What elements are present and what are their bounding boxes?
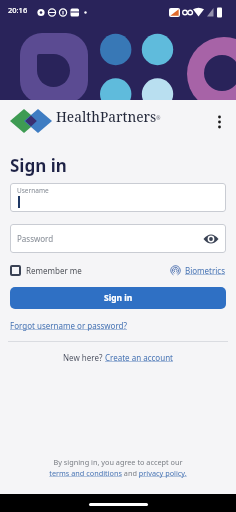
staticText: By signing in, you agree to accept our	[0, 457, 236, 467]
button[interactable]	[10, 265, 21, 276]
staticText: Create an account	[105, 352, 173, 363]
button[interactable]: Forgot username or password?	[10, 320, 127, 331]
button[interactable]: Password	[10, 224, 226, 253]
staticText: 20:16	[8, 5, 28, 15]
staticText: HealthPartners®	[56, 108, 161, 126]
staticText: Sign in	[10, 154, 67, 177]
staticText: Username	[17, 186, 49, 195]
button[interactable]: Sign in	[10, 287, 226, 309]
staticText: Biometrics	[185, 265, 226, 276]
staticText: Sign in	[104, 292, 133, 304]
staticText: Remember me	[26, 265, 82, 276]
button[interactable]: terms and conditions and privacy policy.	[0, 468, 236, 478]
button[interactable]: Username	[10, 183, 226, 212]
button[interactable]	[203, 233, 219, 245]
staticText: New here?	[63, 352, 105, 363]
button[interactable]	[210, 104, 232, 132]
staticText: Password	[17, 233, 54, 244]
button[interactable]: Biometrics	[170, 265, 226, 276]
button[interactable]: New here?	[0, 352, 236, 363]
